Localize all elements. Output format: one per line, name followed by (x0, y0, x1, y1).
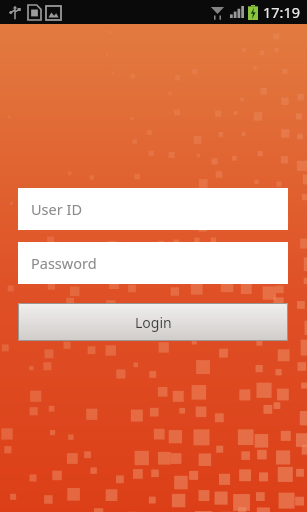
staticText: Password (31, 253, 97, 273)
other: SIM card (28, 5, 41, 20)
button[interactable]: Password (18, 242, 288, 284)
staticText: Login (135, 313, 172, 332)
other: Mobile signal (230, 6, 244, 18)
other: Screenshot captured (46, 6, 61, 20)
button[interactable]: User ID (18, 188, 288, 230)
other: Wi-Fi (210, 5, 225, 20)
staticText: 17:19 (263, 2, 301, 22)
staticText: User ID (31, 199, 82, 219)
button[interactable]: Login (18, 303, 288, 341)
other: USB connected (8, 5, 22, 20)
other: Battery charging (248, 5, 258, 20)
